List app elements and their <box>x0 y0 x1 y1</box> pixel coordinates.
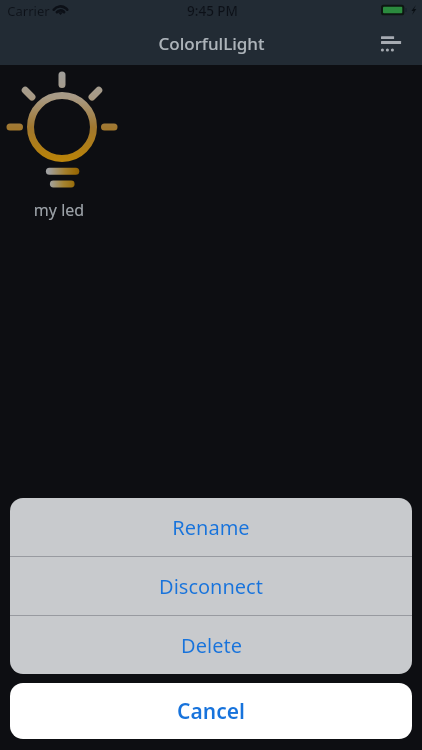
staticText: my led <box>30 199 88 221</box>
button[interactable]: Disconnect <box>10 557 412 615</box>
button[interactable]: Delete <box>10 616 412 674</box>
staticText: Carrier <box>7 2 50 20</box>
staticText: Disconnect <box>159 573 263 600</box>
button[interactable]: Menu <box>363 22 405 64</box>
staticText: Cancel <box>177 697 245 726</box>
staticText: ColorfulLight <box>158 32 265 55</box>
staticText: 9:45 PM <box>187 2 238 20</box>
button[interactable]: Cancel <box>10 683 412 739</box>
button[interactable]: Rename <box>10 498 412 556</box>
button[interactable]: my led <box>2 70 122 222</box>
staticText: Rename <box>172 514 250 541</box>
staticText: Delete <box>181 632 242 659</box>
